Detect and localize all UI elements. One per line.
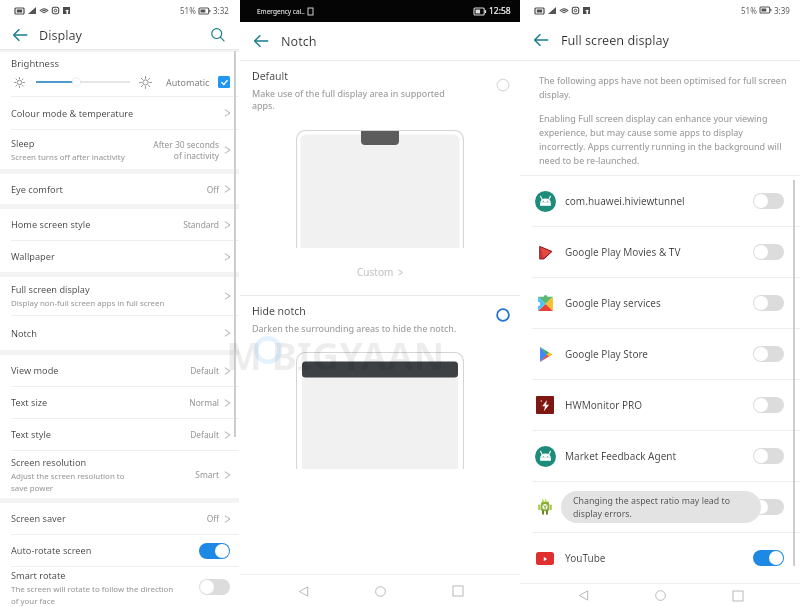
staticText: 3:32 bbox=[213, 5, 229, 16]
staticText: Notch bbox=[281, 33, 317, 50]
staticText: View mode bbox=[11, 364, 59, 377]
staticText: Wallpaper bbox=[11, 250, 55, 263]
staticText: Text size bbox=[11, 396, 48, 409]
staticText: Market Feedback Agent bbox=[565, 449, 753, 463]
staticText: com.huawei.hiviewtunnel bbox=[565, 194, 753, 208]
button[interactable] bbox=[496, 78, 510, 92]
staticText: Default bbox=[190, 365, 219, 376]
other: Search bbox=[210, 27, 226, 43]
button[interactable]: Screen saver bbox=[0, 503, 239, 534]
staticText: Full screen display bbox=[11, 283, 90, 296]
other: Back bbox=[533, 32, 549, 48]
staticText: Default bbox=[252, 69, 289, 83]
button[interactable] bbox=[753, 193, 784, 209]
button[interactable]: Back bbox=[568, 584, 598, 607]
button[interactable]: Home bbox=[645, 584, 675, 607]
staticText: Emergency cal.. bbox=[257, 7, 305, 16]
button[interactable]: Market Feedback Agent bbox=[520, 431, 800, 481]
staticText: Google Play Movies & TV bbox=[565, 245, 753, 259]
staticText: Custom bbox=[357, 265, 394, 279]
button[interactable]: Google Play services bbox=[520, 278, 800, 328]
button[interactable]: Auto-rotate screen bbox=[0, 535, 239, 566]
staticText: Screen resolution bbox=[11, 456, 87, 469]
button[interactable]: Default bbox=[240, 61, 520, 129]
button[interactable] bbox=[218, 76, 230, 88]
staticText: Brightness bbox=[11, 57, 60, 70]
button[interactable]: Hide notch bbox=[240, 296, 520, 340]
staticText: SAD bbox=[565, 500, 753, 514]
staticText: Off bbox=[206, 184, 219, 195]
button[interactable] bbox=[753, 244, 784, 260]
button[interactable]: SAD bbox=[520, 482, 800, 532]
button[interactable]: Eye comfort bbox=[0, 174, 239, 204]
button[interactable]: Text size bbox=[0, 387, 239, 418]
button[interactable]: Recents bbox=[443, 576, 473, 606]
button[interactable] bbox=[199, 543, 230, 559]
button[interactable]: HWMonitor PRO bbox=[520, 380, 800, 430]
button[interactable]: Screen resolution bbox=[0, 451, 239, 498]
button[interactable]: Full screen display bbox=[0, 277, 239, 315]
button[interactable]: Sleep bbox=[0, 130, 239, 169]
staticText: Make use of the full display area in sup… bbox=[252, 87, 467, 112]
button[interactable]: com.huawei.hiviewtunnel bbox=[520, 176, 800, 226]
staticText: Off bbox=[206, 513, 219, 524]
staticText: YouTube bbox=[565, 551, 753, 565]
button[interactable] bbox=[496, 308, 510, 322]
button[interactable]: Notch bbox=[0, 316, 239, 350]
button[interactable]: Back bbox=[288, 576, 318, 606]
button[interactable] bbox=[753, 499, 784, 515]
staticText: Full screen display bbox=[561, 32, 669, 49]
staticText: Normal bbox=[189, 397, 219, 408]
staticText: Smart rotate bbox=[11, 569, 66, 582]
staticText: 51% bbox=[741, 5, 757, 16]
staticText: Display bbox=[39, 27, 82, 44]
button[interactable]: Home screen style bbox=[0, 209, 239, 240]
button[interactable]: Text style bbox=[0, 419, 239, 450]
button[interactable]: Back bbox=[530, 29, 552, 51]
button[interactable] bbox=[753, 295, 784, 311]
staticText: The following apps have not been optimis… bbox=[539, 74, 788, 100]
other: Back bbox=[12, 27, 28, 43]
staticText: Sleep bbox=[11, 137, 35, 150]
staticText: Colour mode & temperature bbox=[11, 107, 134, 120]
staticText: Enabling Full screen display can enhance… bbox=[539, 112, 788, 166]
staticText: Auto-rotate screen bbox=[11, 544, 92, 557]
button[interactable]: Colour mode & temperature bbox=[0, 97, 239, 129]
other: Back bbox=[253, 33, 269, 49]
staticText: Darken the surrounding areas to hide the… bbox=[252, 322, 457, 334]
button[interactable]: View mode bbox=[0, 355, 239, 386]
staticText: Hide notch bbox=[252, 304, 306, 318]
button[interactable]: Back bbox=[9, 24, 31, 46]
staticText: Adjust the screen resolution to save pow… bbox=[11, 471, 125, 493]
button[interactable]: Recents bbox=[723, 584, 753, 607]
staticText: M BIGYAAN bbox=[226, 329, 445, 381]
staticText: Home screen style bbox=[11, 218, 91, 231]
button[interactable]: Home bbox=[365, 576, 395, 606]
staticText: Standard bbox=[183, 219, 219, 230]
button[interactable]: Wallpaper bbox=[0, 241, 239, 272]
button[interactable]: Smart rotate bbox=[0, 567, 239, 607]
staticText: Automatic bbox=[166, 76, 210, 88]
button[interactable]: Google Play Movies & TV bbox=[520, 227, 800, 277]
button[interactable]: Back bbox=[250, 30, 272, 52]
button[interactable] bbox=[199, 579, 230, 595]
button[interactable] bbox=[753, 550, 784, 566]
staticText: 3:39 bbox=[774, 5, 790, 16]
staticText: Default bbox=[190, 429, 219, 440]
button[interactable] bbox=[753, 346, 784, 362]
button[interactable]: YouTube bbox=[520, 533, 800, 583]
button[interactable] bbox=[753, 397, 784, 413]
staticText: 12:58 bbox=[489, 5, 511, 17]
button[interactable]: Google Play Store bbox=[520, 329, 800, 379]
staticText: Google Play services bbox=[565, 296, 753, 310]
staticText: Google Play Store bbox=[565, 347, 753, 361]
staticText: 51% bbox=[180, 5, 196, 16]
staticText: Display non-full screen apps in full scr… bbox=[11, 298, 165, 309]
staticText: Screen saver bbox=[11, 512, 66, 525]
button[interactable]: Search bbox=[207, 24, 229, 46]
staticText: Smart bbox=[195, 469, 219, 480]
staticText: Eye comfort bbox=[11, 183, 63, 196]
button[interactable]: Custom bbox=[240, 248, 520, 295]
staticText: HWMonitor PRO bbox=[565, 398, 753, 412]
button[interactable] bbox=[753, 448, 784, 464]
